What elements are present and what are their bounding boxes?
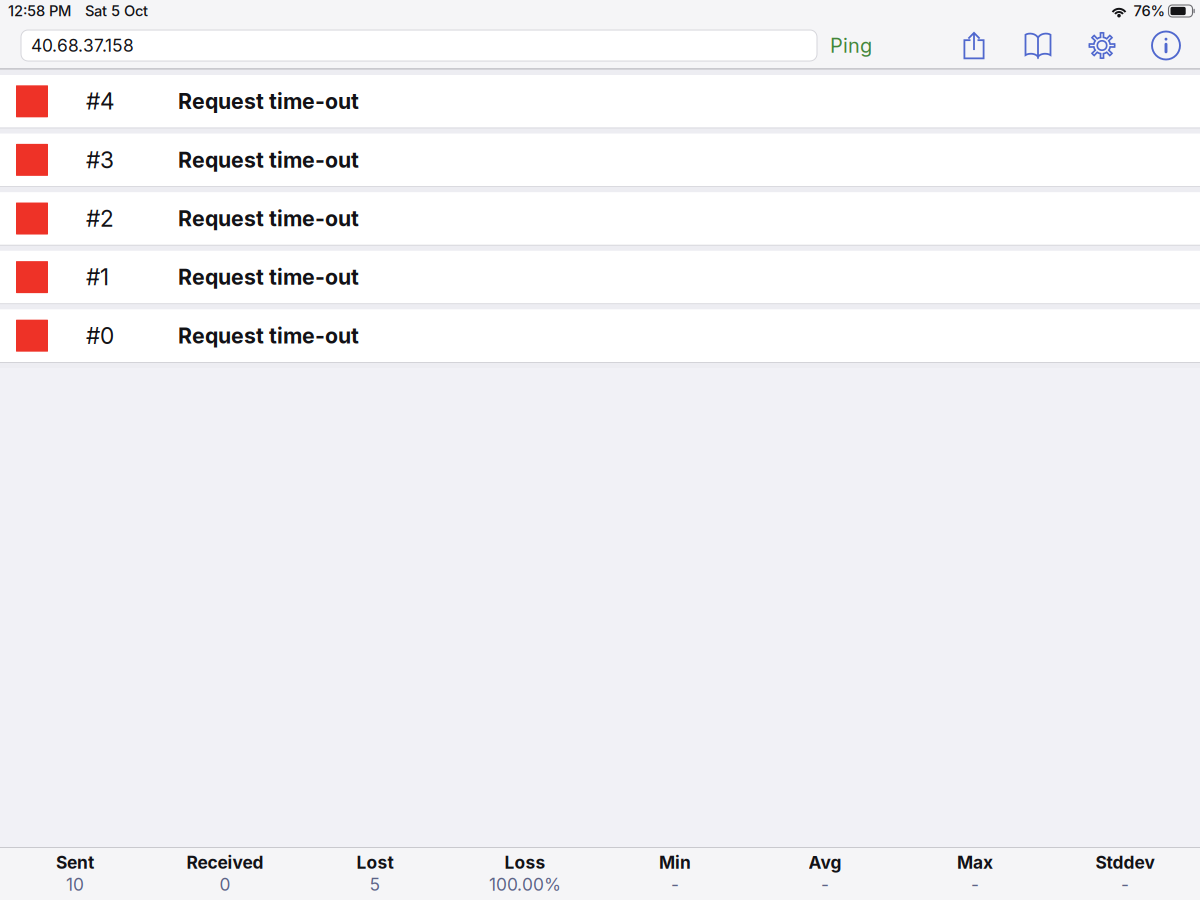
- staticText: Request time-out: [178, 323, 359, 349]
- staticText: Received: [186, 852, 263, 873]
- staticText: Max: [957, 852, 993, 873]
- staticText: 10: [66, 874, 84, 895]
- staticText: -: [671, 874, 679, 895]
- button[interactable]: #0: [0, 309, 1200, 362]
- staticText: Request time-out: [178, 147, 359, 173]
- button[interactable]: #3: [0, 134, 1200, 186]
- staticText: #1: [86, 263, 109, 291]
- staticText: 5: [369, 874, 380, 895]
- staticText: Request time-out: [178, 206, 359, 231]
- staticText: Request time-out: [178, 88, 359, 114]
- staticText: Lost: [356, 852, 393, 873]
- staticText: 40.68.37.158: [31, 35, 134, 56]
- button[interactable]: Info: [1134, 23, 1198, 67]
- staticText: -: [971, 874, 979, 895]
- button[interactable]: #2: [0, 192, 1200, 245]
- staticText: #4: [86, 88, 115, 115]
- staticText: Sat 5 Oct: [85, 2, 148, 20]
- staticText: 0: [219, 874, 230, 895]
- staticText: Loss: [504, 852, 545, 873]
- button[interactable]: #4: [0, 75, 1200, 128]
- button[interactable]: Ping: [817, 23, 885, 67]
- button[interactable]: Share: [942, 23, 1006, 67]
- staticText: Request time-out: [178, 264, 359, 290]
- staticText: #3: [86, 146, 114, 174]
- staticText: 12:58 PM: [8, 2, 71, 20]
- button[interactable]: Settings: [1070, 23, 1134, 67]
- staticText: Sent: [56, 852, 94, 873]
- staticText: -: [821, 874, 829, 895]
- staticText: #0: [86, 322, 114, 349]
- staticText: -: [1121, 874, 1129, 895]
- button[interactable]: Bookmarks: [1006, 23, 1070, 67]
- staticText: Stddev: [1095, 852, 1154, 873]
- button[interactable]: #1: [0, 251, 1200, 303]
- staticText: Avg: [808, 852, 841, 873]
- staticText: #2: [86, 205, 114, 232]
- staticText: Ping: [830, 33, 872, 58]
- staticText: Min: [659, 852, 691, 873]
- staticText: 100.00%: [489, 874, 561, 895]
- staticText: 76%: [1133, 2, 1165, 20]
